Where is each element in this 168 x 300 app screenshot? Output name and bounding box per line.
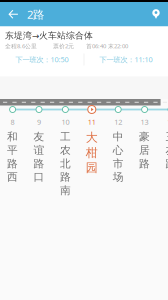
staticText: 中: [113, 130, 124, 143]
staticText: 口: [33, 170, 44, 184]
staticText: 路: [7, 157, 18, 170]
button[interactable]: 2路: [27, 2, 44, 26]
staticText: 市: [113, 157, 124, 170]
staticText: 10: [61, 117, 69, 127]
staticText: 豪: [139, 130, 150, 143]
staticText: 下一班次：10:50: [15, 54, 68, 64]
button[interactable]: Back: [0, 2, 27, 26]
staticText: 平: [7, 143, 18, 157]
staticText: 路: [139, 157, 150, 170]
staticText: 票价2元: [53, 42, 74, 50]
staticText: 大: [86, 130, 98, 145]
staticText: 13: [141, 117, 149, 127]
staticText: 全程8.6公里: [5, 42, 37, 50]
staticText: 14: [167, 117, 168, 127]
staticText: 首06:40 末22:00: [86, 42, 128, 50]
staticText: 友: [33, 130, 44, 143]
staticText: 心: [113, 143, 124, 157]
staticText: 三: [165, 130, 168, 143]
staticText: 农: [60, 143, 71, 157]
staticText: 柑: [86, 145, 98, 160]
staticText: 居: [139, 143, 150, 157]
staticText: 9: [37, 117, 41, 127]
staticText: 12: [114, 117, 122, 127]
staticText: 西: [7, 170, 18, 184]
staticText: 工: [60, 130, 71, 143]
staticText: 路: [60, 170, 71, 184]
staticText: 谊: [33, 143, 44, 157]
staticText: 北: [60, 157, 71, 170]
staticText: 南: [60, 184, 71, 197]
staticText: 场: [113, 170, 124, 184]
staticText: 路: [33, 157, 44, 170]
staticText: 东堤湾→火车站综合体: [5, 30, 93, 41]
staticText: 友: [165, 143, 168, 157]
staticText: 和: [7, 130, 18, 143]
button[interactable]: Show on map: [144, 2, 168, 26]
staticText: 园: [86, 160, 98, 175]
staticText: 2路: [27, 6, 44, 22]
staticText: 路: [165, 157, 168, 170]
staticText: 11: [88, 117, 96, 127]
button[interactable]: 下一班次：10:50: [0, 51, 84, 67]
staticText: 8: [11, 117, 15, 127]
staticText: 下一班次：11:10: [99, 54, 152, 64]
button[interactable]: 下一班次：11:10: [84, 51, 168, 67]
